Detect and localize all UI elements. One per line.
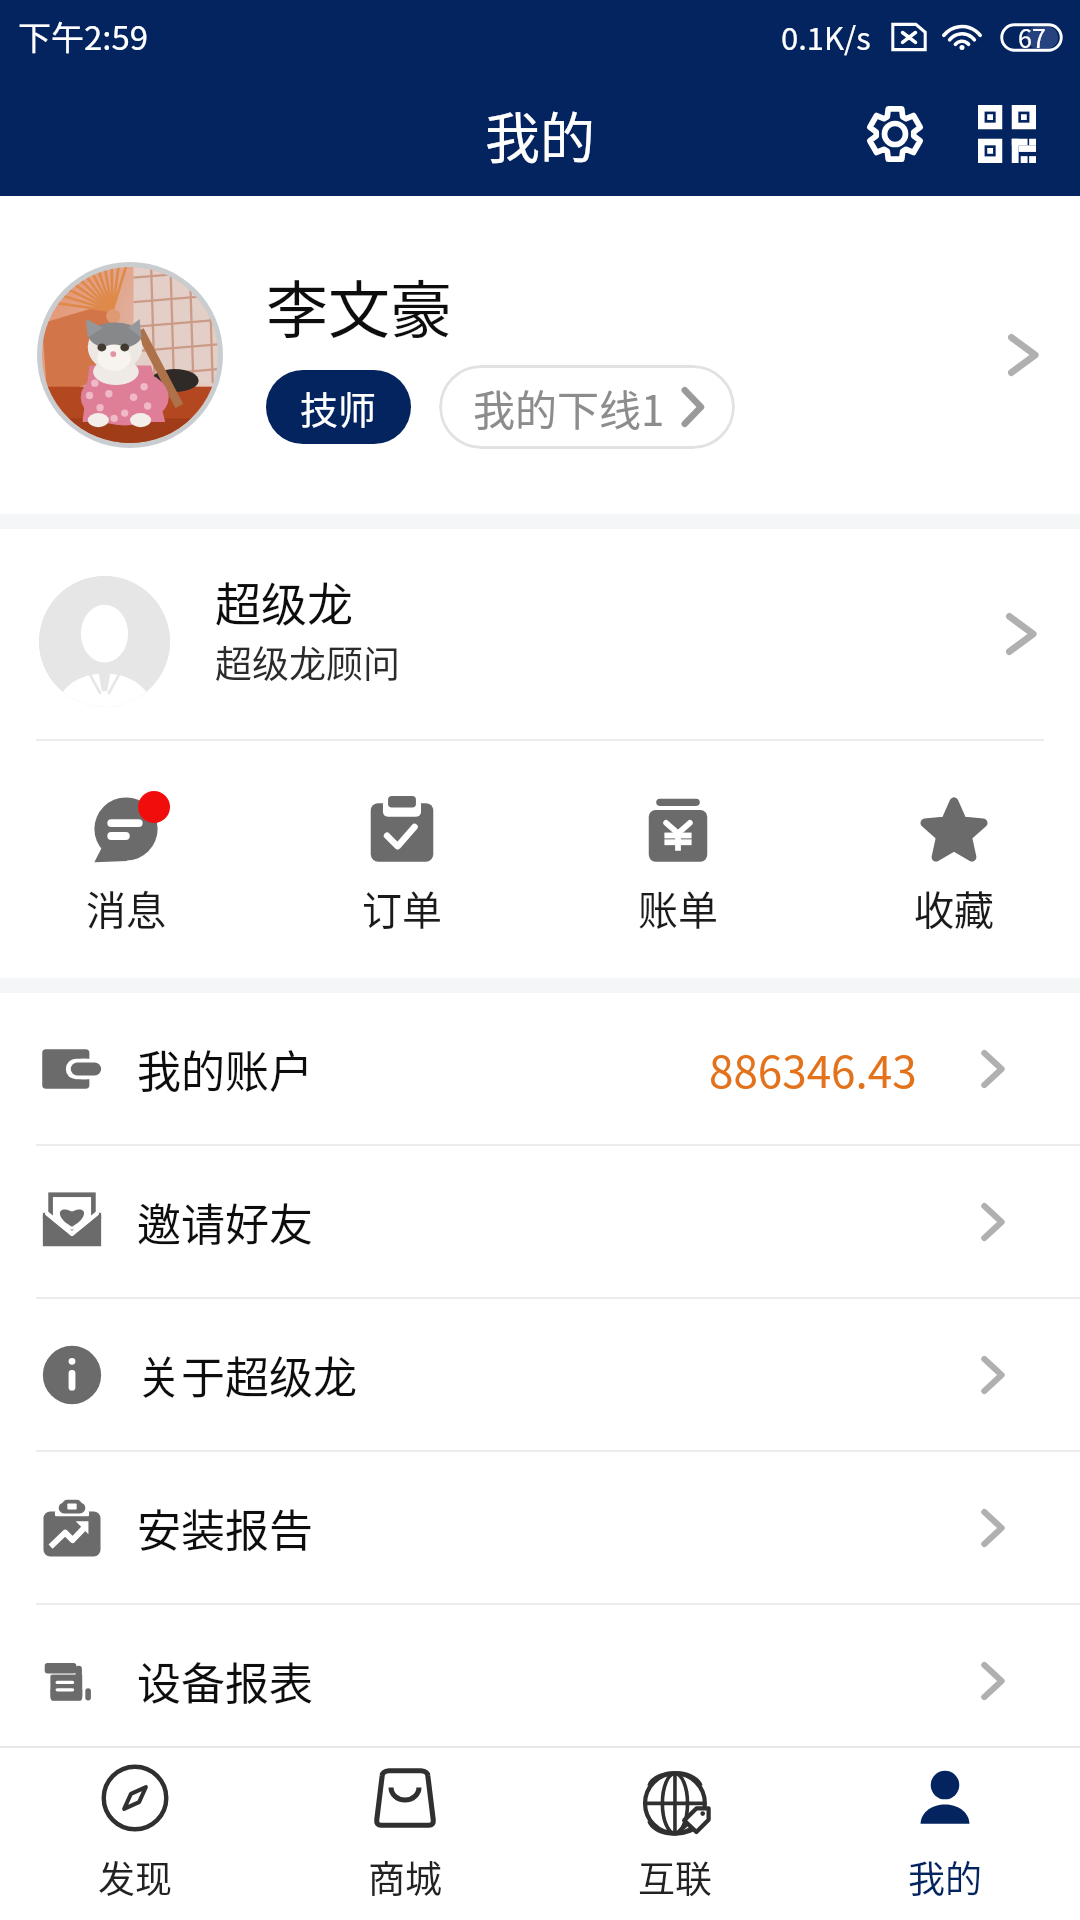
button[interactable]: Settings xyxy=(853,92,937,176)
button[interactable]: 互联 xyxy=(540,1748,810,1920)
staticText: 收藏 xyxy=(914,879,994,937)
button[interactable]: 设备报表 xyxy=(0,1605,1080,1756)
staticText: 我的 xyxy=(908,1850,982,1904)
staticText: 李文豪 xyxy=(266,261,453,351)
button[interactable]: 账单 xyxy=(633,741,723,978)
staticText: 安装报告 xyxy=(137,1496,313,1560)
staticText: 我的账户 xyxy=(137,1037,313,1101)
button[interactable]: 收藏 xyxy=(909,741,999,978)
staticText: 我的下线1 xyxy=(473,377,665,438)
staticText: 886346.43 xyxy=(709,1037,917,1101)
staticText: 发现 xyxy=(98,1850,172,1904)
staticText: 商城 xyxy=(368,1850,442,1904)
staticText: 技师 xyxy=(300,380,377,435)
button[interactable]: 李文豪 xyxy=(0,196,1080,514)
staticText: 设备报表 xyxy=(137,1649,313,1713)
staticText: 67 xyxy=(1018,19,1046,55)
staticText: 账单 xyxy=(638,879,718,937)
button[interactable]: 我的下线1 xyxy=(439,365,735,449)
button[interactable]: 订单 xyxy=(357,741,447,978)
button[interactable]: 超级龙 xyxy=(0,529,1080,739)
button[interactable]: 我的 xyxy=(810,1748,1080,1920)
staticText: 超级龙 xyxy=(215,568,353,635)
staticText: 超级龙顾问 xyxy=(215,635,400,689)
button[interactable]: 技师 xyxy=(266,370,411,444)
staticText: 互联 xyxy=(638,1850,712,1904)
staticText: 0.1K/s xyxy=(781,14,871,59)
button[interactable]: Scan QR code xyxy=(965,92,1049,176)
button[interactable]: 我的账户 xyxy=(0,993,1080,1144)
button[interactable]: 商城 xyxy=(270,1748,540,1920)
button[interactable]: 发现 xyxy=(0,1748,270,1920)
staticText: 关于超级龙 xyxy=(137,1343,357,1407)
staticText: 订单 xyxy=(362,879,442,937)
button[interactable]: 消息 xyxy=(81,741,171,978)
staticText: 消息 xyxy=(86,879,166,937)
staticText: 我的 xyxy=(485,94,596,174)
staticText: 邀请好友 xyxy=(137,1190,313,1254)
button[interactable]: 安装报告 xyxy=(0,1452,1080,1603)
button[interactable]: 邀请好友 xyxy=(0,1146,1080,1297)
staticText: 下午2:59 xyxy=(18,12,149,60)
button[interactable]: 关于超级龙 xyxy=(0,1299,1080,1450)
